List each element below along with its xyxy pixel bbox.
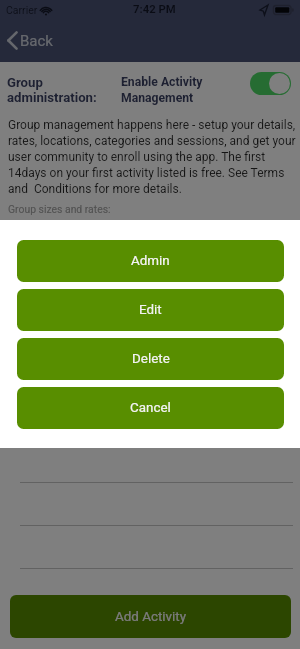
button[interactable]: Edit [17,289,284,331]
button[interactable]: Admin [17,240,284,282]
staticText: Delete [132,351,170,367]
staticText: Admin [131,253,170,269]
staticText: Enable Activity Management [121,75,203,105]
button[interactable] [0,483,300,526]
staticText: Back [20,32,53,50]
button[interactable]: Add Activity [10,595,291,638]
button[interactable] [0,526,300,569]
button[interactable] [0,440,300,483]
button[interactable]: Enable Activity Management [250,72,291,95]
button[interactable]: Back [0,21,65,60]
staticText: Carrier [6,4,38,16]
staticText: Edit [139,302,162,318]
button[interactable]: Cancel [17,387,284,429]
staticText: Group administration: [7,75,97,105]
button[interactable]: Delete [17,338,284,380]
staticText: 7:42 PM [133,3,176,16]
staticText: Cancel [130,400,171,416]
staticText: Add Activity [115,609,187,625]
staticText: Group sizes and rates: [8,203,111,215]
staticText: Group management happens here - setup yo… [8,118,297,196]
